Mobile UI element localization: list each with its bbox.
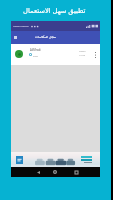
button[interactable]: Back (33, 167, 43, 177)
button[interactable]: Recent apps (71, 167, 81, 177)
button[interactable]: AliSfhadi (11, 44, 100, 65)
staticText: Meezo Telecom (13, 25, 29, 28)
button[interactable]: Open navigation menu (11, 31, 20, 44)
button[interactable]: Advertisement (11, 152, 100, 167)
button[interactable]: More options (91, 44, 100, 65)
staticText: سجل المكالمات (35, 35, 57, 39)
staticText: 0:00 (33, 54, 38, 57)
staticText: AliSfhadi (30, 48, 41, 52)
staticText: 13:53 (79, 53, 86, 56)
staticText: Today (79, 49, 86, 52)
button[interactable]: Home (50, 167, 60, 177)
staticText: تطبيق سهل الاستعمال (23, 6, 86, 15)
